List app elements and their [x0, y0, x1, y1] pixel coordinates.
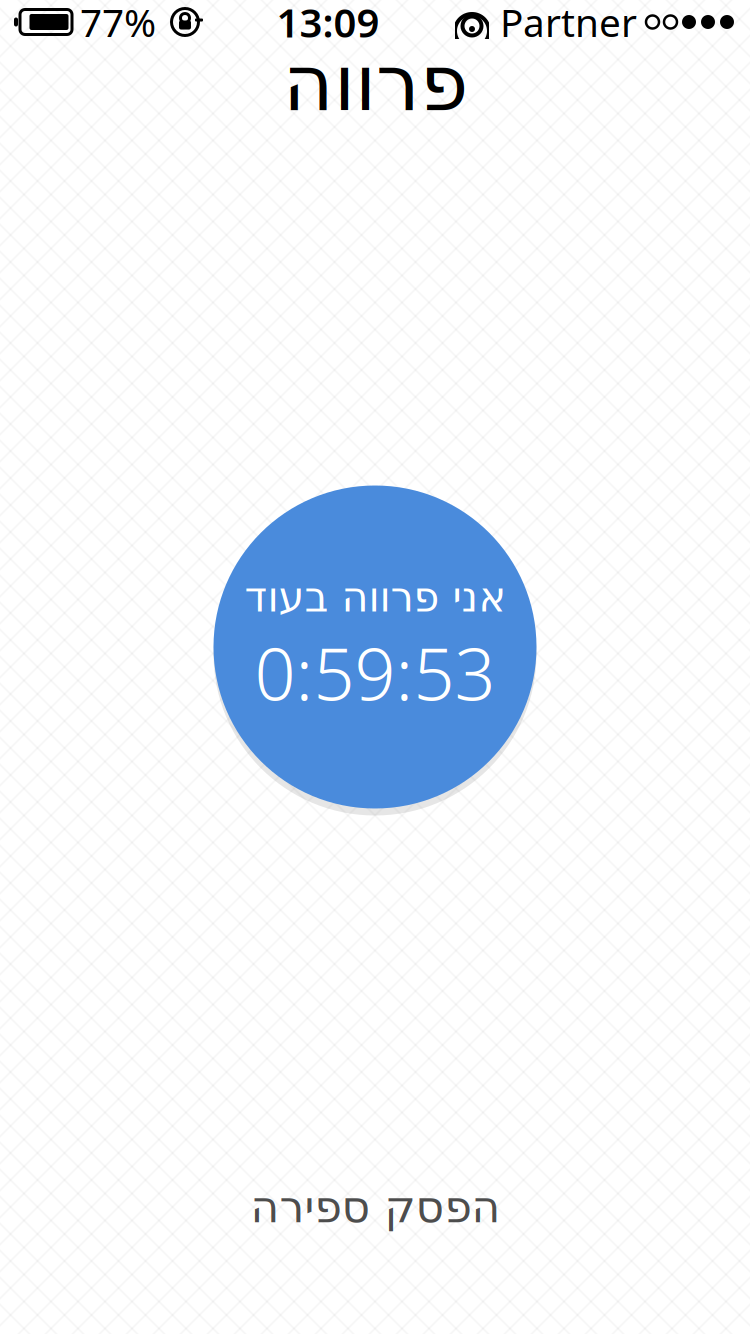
staticText: הפסק ספירה [250, 1182, 500, 1232]
button[interactable]: הפסק ספירה [0, 1172, 750, 1242]
staticText: 0:59:53 [254, 625, 495, 720]
staticText: Partner [500, 0, 637, 48]
staticText: 77% [80, 0, 156, 48]
staticText: 13:09 [276, 0, 379, 48]
button[interactable]: אני פרווה בעוד [205, 477, 545, 817]
staticText: פרווה [282, 39, 467, 127]
staticText: אני פרווה בעוד [244, 574, 506, 621]
